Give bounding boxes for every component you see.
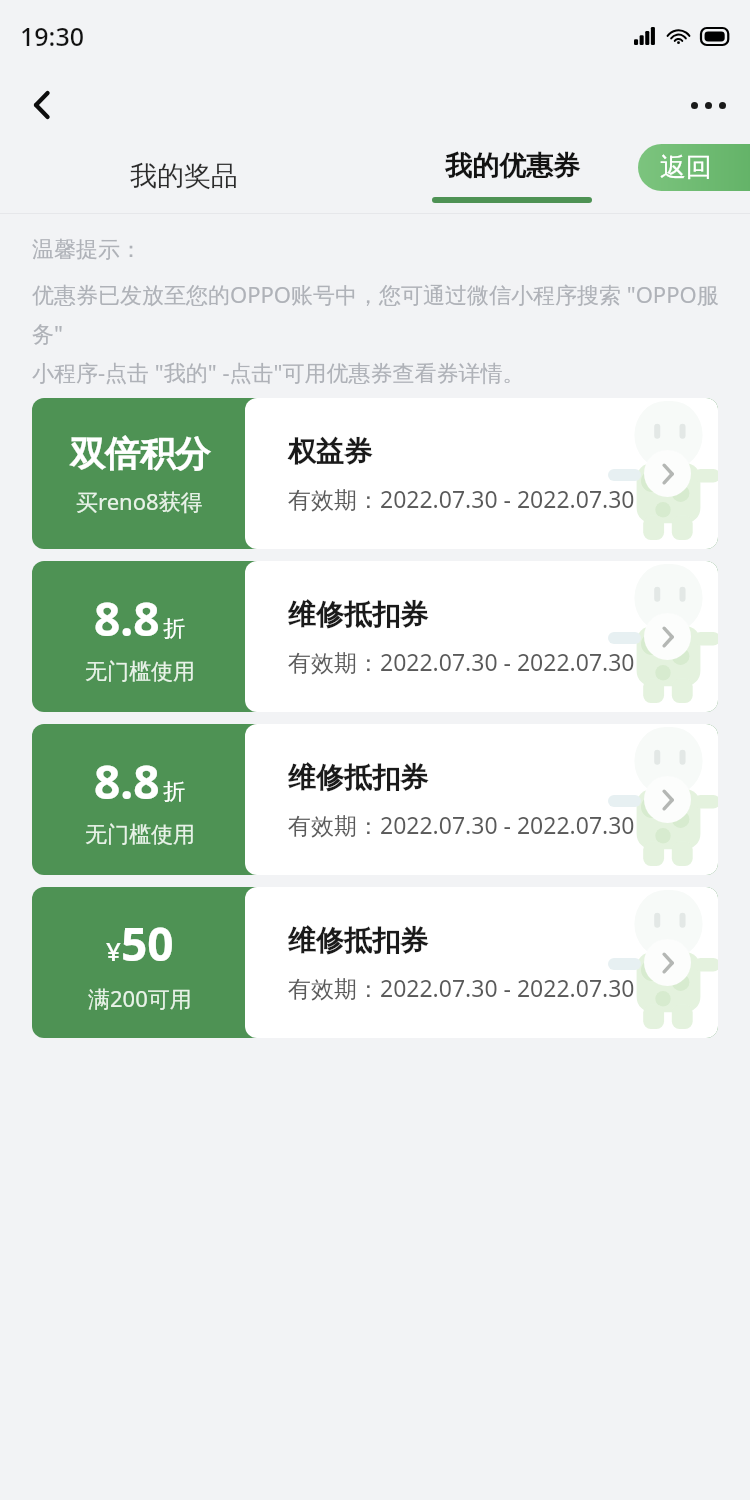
staticText: 满200可用 <box>88 983 192 1013</box>
button[interactable]: 我的优惠券 <box>432 149 592 203</box>
button[interactable]: 维修抵扣券 <box>32 561 718 712</box>
staticText: 我的奖品 <box>130 159 238 193</box>
staticText: 维修抵扣券 <box>288 923 428 958</box>
staticText: 无门槛使用 <box>85 658 195 686</box>
staticText: 50 <box>121 912 174 975</box>
staticText: 维修抵扣券 <box>288 597 428 632</box>
button[interactable]: More options <box>680 77 736 133</box>
staticText: 有效期：2022.07.30 - 2022.07.30 <box>288 809 635 840</box>
staticText: 19:30 <box>20 19 85 53</box>
staticText: 无门槛使用 <box>85 821 195 849</box>
staticText: 有效期：2022.07.30 - 2022.07.30 <box>288 483 635 514</box>
staticText: ¥ <box>106 933 121 968</box>
button[interactable]: Open coupon detail <box>644 939 691 986</box>
staticText: 8.8 <box>94 750 160 813</box>
button[interactable]: Open coupon detail <box>644 450 691 497</box>
staticText: 有效期：2022.07.30 - 2022.07.30 <box>288 646 635 677</box>
staticText: 我的优惠券 <box>445 149 580 183</box>
button[interactable]: 维修抵扣券 <box>32 724 718 875</box>
button[interactable]: Back <box>14 77 70 133</box>
staticText: 小程序-点击 "我的" -点击"可用优惠券查看券详情。 <box>32 357 525 387</box>
button[interactable]: 返回 <box>638 144 750 191</box>
staticText: 权益券 <box>288 434 372 469</box>
button[interactable]: 我的奖品 <box>130 159 238 193</box>
staticText: 返回 <box>660 151 712 184</box>
staticText: 有效期：2022.07.30 - 2022.07.30 <box>288 972 635 1003</box>
button[interactable]: 维修抵扣券 <box>32 887 718 1038</box>
button[interactable]: Open coupon detail <box>644 776 691 823</box>
staticText: 8.8 <box>94 587 160 650</box>
button[interactable]: 权益券 <box>32 398 718 549</box>
staticText: 买reno8获得 <box>76 486 203 516</box>
staticText: 双倍积分 <box>70 432 210 476</box>
staticText: 维修抵扣券 <box>288 760 428 795</box>
staticText: 优惠券已发放至您的OPPO账号中，您可通过微信小程序搜索 "OPPO服务" <box>32 279 722 348</box>
staticText: 温馨提示： <box>32 236 142 264</box>
button[interactable]: Open coupon detail <box>644 613 691 660</box>
staticText: 折 <box>163 615 185 643</box>
staticText: 折 <box>163 778 185 806</box>
